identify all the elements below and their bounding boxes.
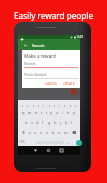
staticText: t: [46, 110, 48, 115]
staticText: j: [60, 120, 62, 125]
staticText: Reward: [24, 62, 36, 66]
staticText: d: [36, 120, 39, 125]
staticText: b: [52, 130, 55, 135]
staticText: s: [31, 120, 33, 125]
staticText: n: [58, 130, 61, 135]
staticText: z: [29, 130, 31, 135]
staticText: CANCEL: [45, 81, 58, 85]
staticText: q: [22, 110, 25, 115]
staticText: 8:49: [77, 35, 83, 39]
staticText: CREATE: [63, 81, 75, 85]
staticText: o: [67, 110, 70, 115]
staticText: u: [56, 110, 59, 115]
staticText: Make a reward: [24, 53, 56, 59]
staticText: w: [28, 110, 32, 115]
button[interactable]: CANCEL: [44, 80, 59, 86]
button[interactable]: Recents: [58, 147, 65, 154]
staticText: i: [62, 110, 64, 115]
staticText: l: [71, 120, 73, 125]
button[interactable]: Back: [32, 147, 39, 154]
button[interactable]: Enter: [76, 140, 82, 146]
staticText: e: [35, 110, 38, 115]
button[interactable]: Home: [45, 147, 52, 154]
staticText: k: [65, 120, 68, 125]
staticText: r: [41, 110, 43, 115]
staticText: y: [50, 110, 53, 115]
button[interactable]: Navigate up: [24, 44, 27, 47]
staticText: a: [25, 120, 28, 125]
staticText: h: [54, 120, 57, 125]
staticText: m: [64, 130, 68, 135]
staticText: g: [48, 120, 51, 125]
staticText: v: [46, 130, 49, 135]
staticText: Rewards: [32, 44, 45, 48]
staticText: p: [73, 110, 76, 115]
staticText: Points Needed: [24, 73, 46, 77]
staticText: f: [42, 120, 44, 125]
staticText: ?123: [19, 140, 25, 144]
staticText: Easily reward people: [0, 10, 107, 21]
staticText: x: [34, 130, 37, 135]
staticText: c: [40, 130, 42, 135]
button[interactable]: CREATE: [62, 80, 76, 86]
